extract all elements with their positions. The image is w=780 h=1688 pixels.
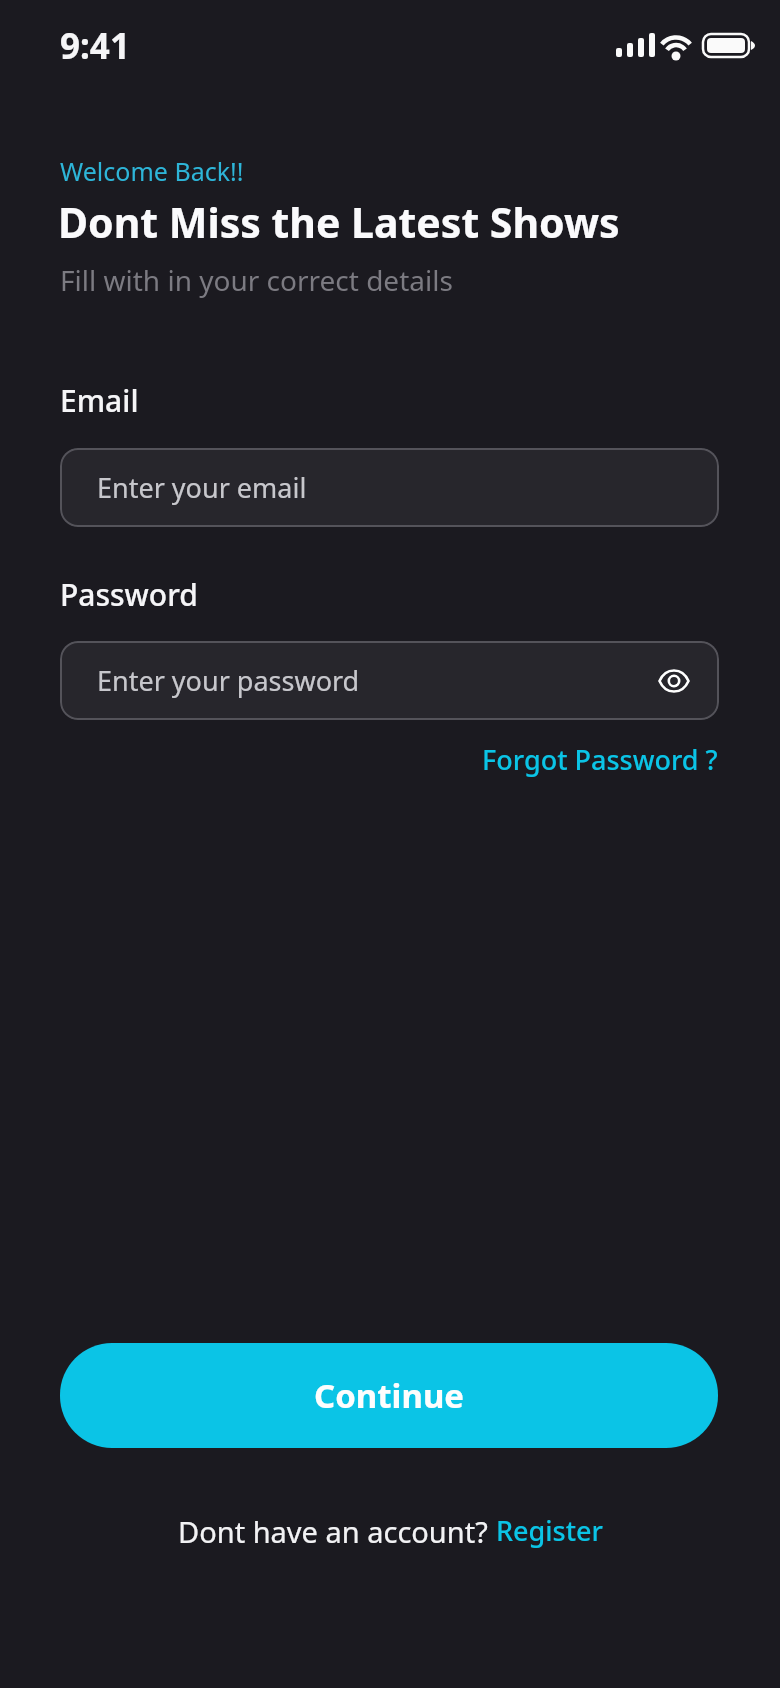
staticText: Welcome Back!! bbox=[60, 154, 244, 188]
staticText: Fill with in your correct details bbox=[60, 261, 453, 299]
staticText: 9:41 bbox=[60, 22, 130, 70]
button[interactable]: Continue bbox=[60, 1343, 718, 1448]
staticText: Email bbox=[60, 380, 139, 421]
staticText: Password bbox=[60, 574, 198, 615]
button[interactable]: Enter your email bbox=[60, 448, 719, 527]
staticText: Continue bbox=[314, 1373, 465, 1418]
staticText: Register bbox=[496, 1512, 603, 1549]
staticText: Dont Miss the Latest Shows bbox=[58, 194, 620, 250]
staticText: Enter your password bbox=[97, 662, 360, 699]
button[interactable]: Enter your password bbox=[60, 641, 719, 720]
staticText: Enter your email bbox=[97, 469, 307, 506]
button[interactable]: Dont have an account? bbox=[0, 1512, 780, 1551]
staticText: Dont have an account? bbox=[178, 1512, 496, 1551]
button[interactable]: Forgot Password ? bbox=[482, 741, 718, 778]
